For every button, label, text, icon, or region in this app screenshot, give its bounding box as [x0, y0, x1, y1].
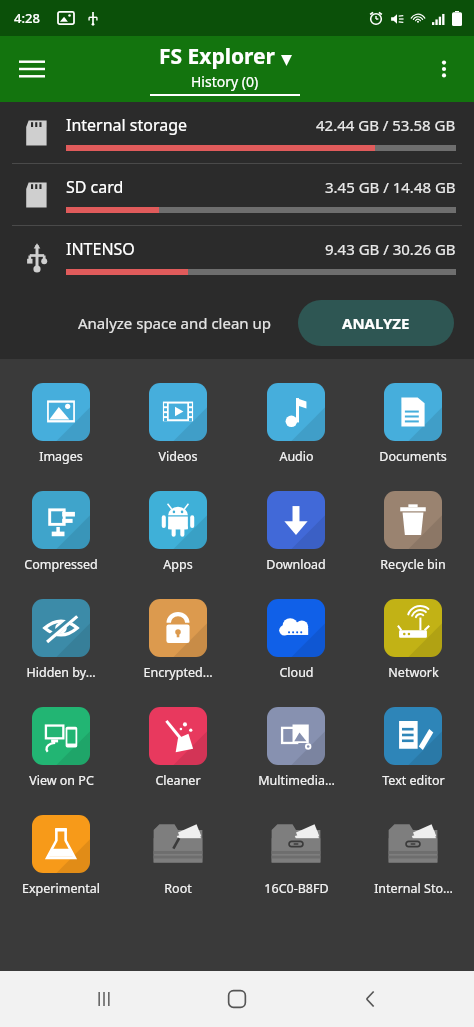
button[interactable]: Encrypted…: [122, 597, 234, 683]
staticText: 9.43 GB / 30.26 GB: [325, 239, 456, 259]
button[interactable]: Network: [357, 597, 469, 683]
button[interactable]: Multimedia…: [240, 705, 352, 791]
staticText: Network: [388, 664, 439, 681]
staticText: Documents: [379, 448, 447, 465]
staticText: Encrypted…: [143, 664, 213, 681]
button[interactable]: Root: [122, 813, 234, 899]
staticText: ANALYZE: [342, 313, 410, 333]
staticText: 4:28: [14, 9, 40, 27]
button[interactable]: Experimental: [5, 813, 117, 899]
button[interactable]: SD card: [0, 164, 474, 225]
button[interactable]: Download: [240, 489, 352, 575]
button[interactable]: 16C0-B8FD: [240, 813, 352, 899]
button[interactable]: Documents: [357, 381, 469, 467]
staticText: Cleaner: [155, 772, 201, 789]
button[interactable]: Apps: [122, 489, 234, 575]
staticText: FS Explorer: [159, 42, 276, 71]
staticText: Apps: [163, 556, 193, 573]
staticText: Experimental: [22, 880, 100, 897]
button[interactable]: Back: [341, 971, 401, 1027]
staticText: History (0): [191, 72, 259, 91]
staticText: Multimedia…: [258, 772, 335, 789]
staticText: View on PC: [29, 772, 94, 789]
staticText: Videos: [158, 448, 198, 465]
staticText: Images: [39, 448, 83, 465]
button[interactable]: INTENSO: [0, 226, 474, 287]
button[interactable]: Videos: [122, 381, 234, 467]
button[interactable]: Cloud: [240, 597, 352, 683]
staticText: Audio: [279, 448, 314, 465]
button[interactable]: Open navigation menu: [8, 45, 56, 93]
staticText: Internal Sto…: [374, 880, 453, 897]
staticText: Compressed: [24, 556, 98, 573]
staticText: Cloud: [279, 664, 314, 681]
staticText: 3.45 GB / 14.48 GB: [325, 177, 456, 197]
button[interactable]: Hidden by…: [5, 597, 117, 683]
staticText: 16C0-B8FD: [264, 880, 329, 897]
staticText: Recycle bin: [380, 556, 446, 573]
staticText: SD card: [66, 176, 325, 198]
button[interactable]: Internal Sto…: [357, 813, 469, 899]
staticText: Text editor: [382, 772, 445, 789]
button[interactable]: Home: [207, 971, 267, 1027]
button[interactable]: ANALYZE: [298, 300, 454, 346]
button[interactable]: Internal storage: [0, 102, 474, 163]
staticText: Analyze space and clean up: [78, 313, 272, 333]
staticText: Root: [164, 880, 192, 897]
button[interactable]: View on PC: [5, 705, 117, 791]
button[interactable]: Compressed: [5, 489, 117, 575]
button[interactable]: Audio: [240, 381, 352, 467]
button[interactable]: Cleaner: [122, 705, 234, 791]
staticText: 42.44 GB / 53.58 GB: [316, 115, 456, 135]
staticText: Internal storage: [66, 114, 316, 136]
button[interactable]: FS Explorer: [150, 42, 300, 96]
button[interactable]: Recycle bin: [357, 489, 469, 575]
staticText: INTENSO: [66, 238, 325, 260]
button[interactable]: Text editor: [357, 705, 469, 791]
button[interactable]: Recent apps: [74, 971, 134, 1027]
button[interactable]: More options: [420, 45, 468, 93]
staticText: Download: [266, 556, 326, 573]
staticText: Hidden by…: [26, 664, 96, 681]
button[interactable]: Images: [5, 381, 117, 467]
